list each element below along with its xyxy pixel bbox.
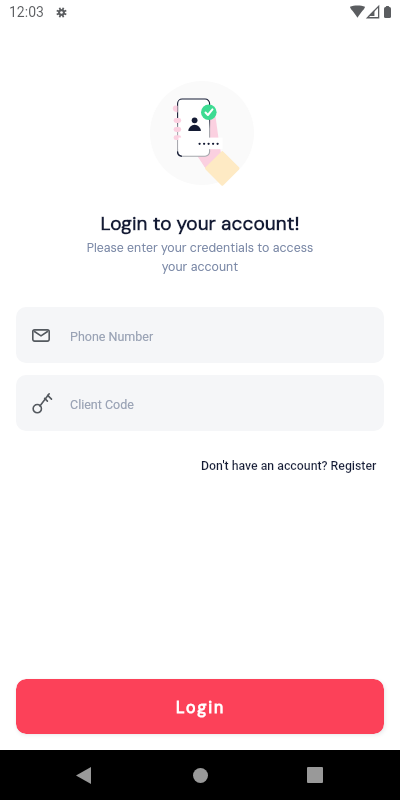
staticText: 12:03 (9, 4, 44, 20)
staticText: Client Code (70, 397, 134, 412)
staticText: Login to your account! (0, 211, 400, 236)
button[interactable]: Recent apps (276, 750, 354, 800)
button[interactable]: Don't have an account? Register (197, 454, 381, 478)
button[interactable]: Back (45, 750, 122, 800)
button[interactable]: Login (16, 679, 384, 734)
staticText: Don't have an account? Register (201, 459, 377, 473)
staticText: Phone Number (70, 329, 154, 344)
staticText: Login (176, 697, 226, 718)
button[interactable]: Home (161, 750, 239, 800)
button[interactable]: Phone Number (16, 307, 384, 363)
staticText: Please enter your credentials to access … (0, 240, 400, 275)
button[interactable]: Client Code (16, 375, 384, 431)
